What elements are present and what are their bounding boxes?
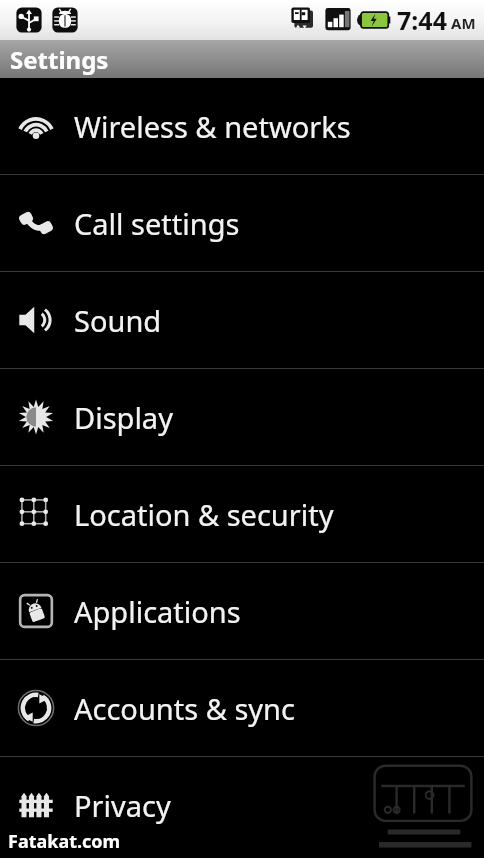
button[interactable]: Location & security <box>0 466 484 562</box>
staticText: Sound <box>74 301 162 340</box>
staticText: Accounts & sync <box>74 689 295 728</box>
button[interactable]: Sound <box>0 272 484 368</box>
staticText: Location & security <box>74 495 334 534</box>
staticText: 7:44 <box>397 3 447 37</box>
button[interactable]: Applications <box>0 563 484 659</box>
button[interactable]: Wireless & networks <box>0 78 484 174</box>
staticText: Call settings <box>74 204 240 243</box>
button[interactable]: Display <box>0 369 484 465</box>
staticText: AM <box>451 13 476 33</box>
button[interactable]: Call settings <box>0 175 484 271</box>
staticText: Fatakat.com <box>8 829 121 854</box>
staticText: Privacy <box>74 786 171 825</box>
staticText: Settings <box>10 43 109 76</box>
staticText: Display <box>74 398 173 437</box>
staticText: Applications <box>74 592 241 631</box>
staticText: Wireless & networks <box>74 107 351 146</box>
button[interactable]: Privacy <box>0 757 484 853</box>
button[interactable]: Accounts & sync <box>0 660 484 756</box>
